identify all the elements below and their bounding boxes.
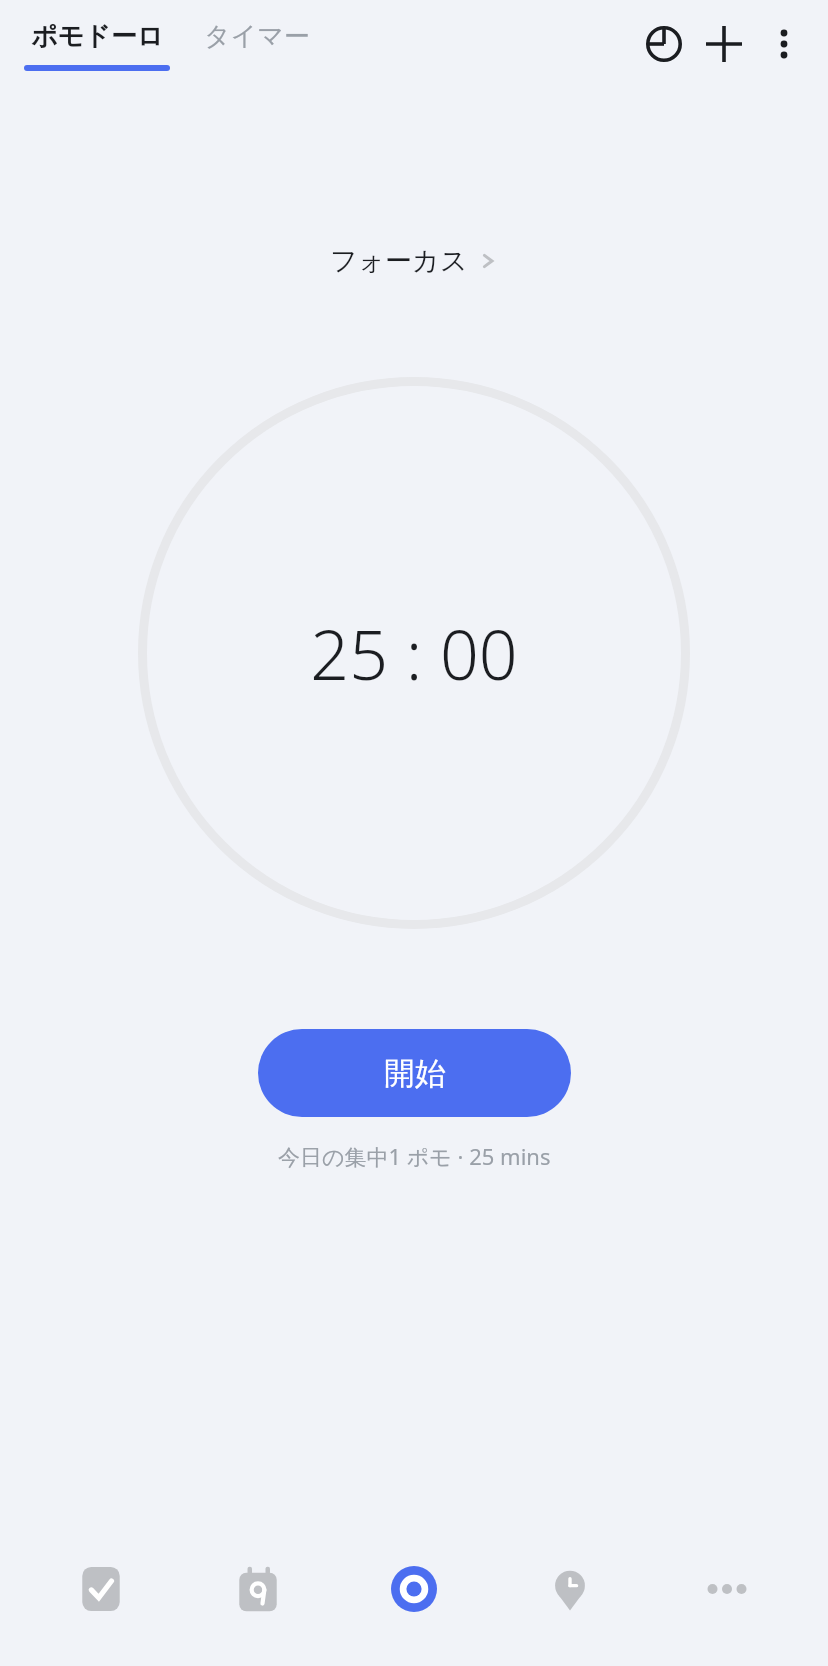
button[interactable]: 開始	[258, 1029, 571, 1117]
button[interactable]: Statistics	[634, 14, 694, 74]
button[interactable]: Add	[694, 14, 754, 74]
button[interactable]: ポモドーロ	[24, 20, 170, 71]
button[interactable]: Tasks	[46, 1541, 156, 1637]
staticText: 25 : 00	[310, 607, 518, 700]
button[interactable]: More options	[754, 14, 814, 74]
button[interactable]: More	[672, 1541, 782, 1637]
staticText: タイマー	[204, 20, 310, 53]
button[interactable]: タイマー	[204, 20, 310, 53]
staticText: 開始	[384, 1054, 446, 1093]
button[interactable]: Pomodoro	[359, 1541, 469, 1637]
button[interactable]: Calendar	[203, 1541, 313, 1637]
staticText: ポモドーロ	[31, 20, 164, 53]
staticText: フォーカス	[330, 244, 468, 278]
button[interactable]: 25 : 00	[138, 377, 690, 929]
button[interactable]: Habits	[515, 1541, 625, 1637]
button[interactable]: フォーカス	[322, 240, 506, 282]
staticText: 今日の集中1 ポモ · 25 mins	[278, 1141, 551, 1171]
